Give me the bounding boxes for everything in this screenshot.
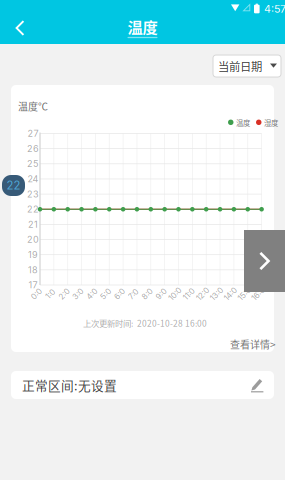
staticText: 15:0 [237, 289, 252, 299]
staticText: 1:0 [45, 289, 55, 299]
staticText: 20 [27, 234, 39, 245]
staticText: 18 [28, 264, 38, 275]
staticText: 上次更新时间: 2020-10-28 16:00 [83, 317, 207, 329]
staticText: 温度℃ [18, 99, 48, 113]
button[interactable]: Back [3, 13, 37, 43]
staticText: 17 [28, 279, 37, 290]
staticText: 4:0 [86, 289, 98, 299]
staticText: 正常区间:无设置 [22, 376, 117, 394]
staticText: 7:0 [128, 289, 139, 299]
staticText: 6:0 [114, 289, 126, 299]
staticText: 温度 [236, 117, 250, 128]
staticText: 25 [27, 158, 39, 169]
button[interactable]: 当前日期 [213, 55, 281, 77]
staticText: 2:0 [58, 289, 70, 299]
staticText: 10:0 [167, 289, 182, 299]
button[interactable]: 查看详情> [230, 337, 276, 351]
staticText: 19 [28, 249, 38, 260]
staticText: 11:0 [182, 289, 195, 299]
staticText: 温度 [127, 15, 157, 38]
staticText: 8:0 [141, 289, 153, 299]
staticText: 9:0 [155, 289, 167, 299]
staticText: 23 [27, 189, 39, 200]
staticText: 13:0 [209, 289, 224, 299]
button[interactable]: Next page [244, 230, 285, 292]
staticText: 16:0 [251, 289, 266, 299]
staticText: 22 [27, 204, 39, 215]
staticText: 27 [27, 128, 38, 139]
button[interactable]: 正常区间:无设置 [11, 371, 274, 399]
staticText: 14:0 [223, 289, 238, 299]
staticText: 12:0 [195, 289, 210, 299]
staticText: 0:0 [30, 289, 42, 299]
staticText: 26 [27, 143, 39, 154]
staticText: 3:0 [72, 289, 84, 299]
staticText: 查看详情> [230, 337, 276, 351]
staticText: 4:57 [264, 2, 285, 15]
staticText: 当前日期 [218, 58, 262, 74]
staticText: 22 [6, 179, 20, 192]
staticText: 24 [27, 173, 38, 184]
staticText: 5:0 [100, 289, 112, 299]
staticText: 湿度 [264, 117, 278, 128]
staticText: 21 [28, 219, 38, 230]
